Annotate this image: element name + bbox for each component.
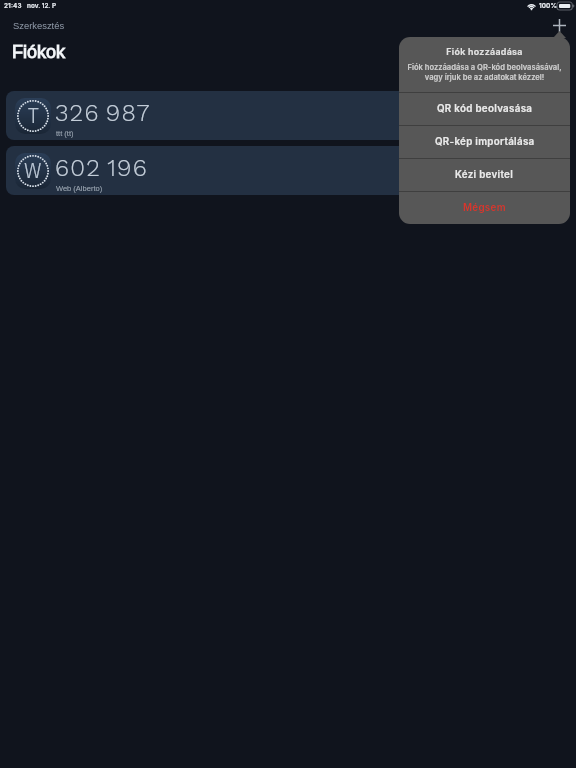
button[interactable]: Kézi bevitel <box>399 159 570 191</box>
staticText: QR-kép importálása <box>435 136 535 148</box>
button[interactable]: Add account <box>548 14 570 36</box>
staticText: Szerkesztés <box>13 20 65 31</box>
staticText: 602 196 <box>55 153 148 181</box>
staticText: 100% <box>539 2 557 10</box>
staticText: QR kód beolvasása <box>437 103 533 115</box>
staticText: nov. 12. P <box>27 2 57 10</box>
button[interactable]: Szerkesztés <box>8 18 70 33</box>
staticText: Fiók hozzáadása <box>403 46 566 57</box>
button[interactable]: Mégsem <box>399 192 570 224</box>
staticText: 326 987 <box>55 98 151 126</box>
button[interactable]: QR-kép importálása <box>399 126 570 158</box>
staticText: W <box>24 158 42 184</box>
staticText: Kézi bevitel <box>455 169 514 181</box>
staticText: ttt (tt) <box>56 129 74 137</box>
button[interactable]: QR kód beolvasása <box>399 93 570 125</box>
staticText: Fiók hozzáadása a QR-kód beolvasásával, … <box>403 63 566 82</box>
staticText: 21:43 <box>4 2 22 10</box>
staticText: T <box>28 103 39 129</box>
staticText: Fiókok <box>12 42 66 62</box>
staticText: Mégsem <box>463 202 506 214</box>
staticText: Web (Alberto) <box>56 184 103 192</box>
button[interactable]: W <box>6 146 570 195</box>
button[interactable]: T <box>6 91 570 140</box>
